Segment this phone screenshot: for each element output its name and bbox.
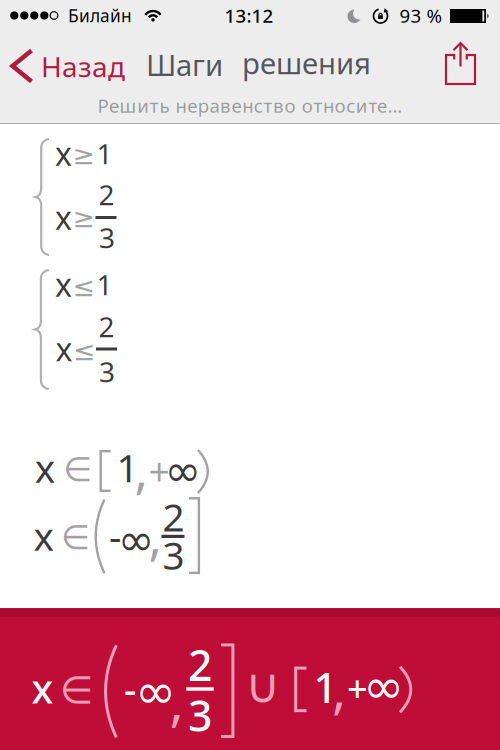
staticText: ∞ (363, 658, 404, 714)
staticText: 1 (96, 266, 112, 303)
staticText: 3 (188, 687, 212, 743)
staticText: ≤ (72, 272, 94, 302)
staticText: ≥ (72, 203, 94, 233)
button[interactable]: Назад (0, 36, 140, 96)
staticText: 2 (162, 491, 184, 542)
staticText: x (33, 510, 53, 561)
staticText: ∞ (135, 663, 176, 719)
staticText: ∈ (60, 668, 94, 712)
staticText: + (149, 446, 170, 496)
staticText: - (109, 510, 121, 562)
staticText: x (55, 328, 72, 370)
staticText: 13:12 (224, 3, 273, 28)
staticText: x (55, 132, 72, 175)
staticText: ∈ (63, 450, 92, 488)
staticText: 1 (96, 135, 112, 172)
staticText: 1 (313, 659, 337, 714)
staticText: 1 (116, 442, 138, 493)
button[interactable]: Share (438, 39, 482, 87)
staticText: ≥ (72, 140, 94, 170)
staticText: , (149, 501, 163, 569)
staticText: ∈ (61, 518, 90, 556)
staticText: , (332, 652, 346, 723)
staticText: Назад (41, 48, 125, 85)
staticText: ≤ (73, 336, 95, 366)
staticText: Решить неравенство относите… (97, 93, 403, 118)
staticText: + (347, 664, 368, 712)
staticText: Билайн (68, 4, 132, 27)
staticText: x (55, 196, 72, 239)
staticText: x (31, 661, 53, 714)
staticText: 2 (188, 636, 212, 693)
staticText: Шаги (146, 45, 223, 84)
staticText: ∪ (245, 659, 280, 713)
staticText: 93 % (399, 3, 442, 28)
staticText: решения (242, 43, 371, 82)
staticText: 3 (162, 529, 184, 580)
staticText: x (35, 442, 55, 493)
staticText: - (124, 662, 136, 714)
staticText: 2 (98, 176, 114, 213)
staticText: x (55, 263, 72, 306)
staticText: 3 (99, 219, 115, 256)
staticText: , (134, 435, 148, 502)
staticText: 2 (98, 308, 114, 345)
staticText: ∞ (164, 446, 201, 496)
staticText: 3 (99, 353, 115, 390)
staticText: , (169, 665, 183, 736)
staticText: ∞ (118, 515, 155, 565)
